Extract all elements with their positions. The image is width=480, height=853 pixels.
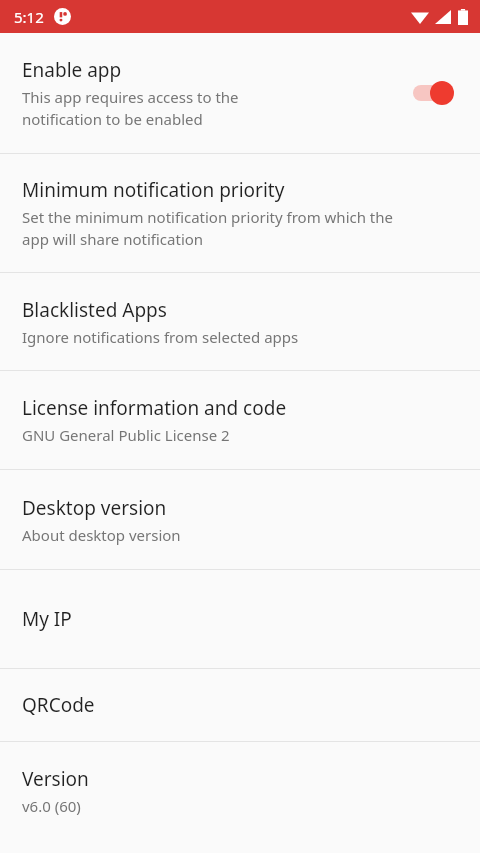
staticText: About desktop version xyxy=(22,525,181,545)
staticText: License information and code xyxy=(22,395,287,421)
staticText: 5:12 xyxy=(14,7,44,27)
button[interactable]: Version xyxy=(0,742,480,840)
button[interactable]: QRCode xyxy=(0,669,480,741)
button[interactable]: Enable app xyxy=(0,33,480,153)
staticText: Set the minimum notification priority fr… xyxy=(22,207,394,250)
staticText: Minimum notification priority xyxy=(22,177,285,203)
staticText: v6.0 (60) xyxy=(22,796,81,816)
staticText: My IP xyxy=(22,606,72,632)
button[interactable]: Enable app toggle xyxy=(408,76,464,110)
button[interactable]: Minimum notification priority xyxy=(0,154,480,272)
staticText: Blacklisted Apps xyxy=(22,297,167,323)
staticText: This app requires access to the notifica… xyxy=(22,87,239,130)
staticText: Ignore notifications from selected apps xyxy=(22,327,299,347)
staticText: GNU General Public License 2 xyxy=(22,425,230,445)
staticText: Desktop version xyxy=(22,495,167,521)
staticText: Version xyxy=(22,766,89,792)
staticText: Enable app xyxy=(22,57,122,83)
button[interactable]: Blacklisted Apps xyxy=(0,273,480,370)
staticText: QRCode xyxy=(22,692,95,718)
button[interactable]: My IP xyxy=(0,570,480,668)
button[interactable]: Desktop version xyxy=(0,470,480,569)
button[interactable]: License information and code xyxy=(0,371,480,469)
